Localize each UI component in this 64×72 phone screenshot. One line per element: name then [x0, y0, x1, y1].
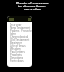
staticText: to choose from:	[18, 4, 46, 7]
staticText: Psalms	[10, 29, 20, 32]
button[interactable]: Beginner	[10, 41, 32, 44]
button[interactable]: Old Testament	[10, 38, 32, 41]
staticText: In a year	[10, 23, 22, 26]
button[interactable]: John	[10, 32, 32, 35]
staticText: your plan	[24, 7, 41, 10]
staticText: Paul letters	[10, 50, 25, 53]
staticText: Old Testament	[10, 38, 30, 41]
staticText: Forty days	[10, 59, 24, 62]
button[interactable]: New Testament	[10, 26, 32, 29]
button[interactable]: Wisdom	[10, 47, 32, 50]
staticText: New Testament	[10, 26, 31, 29]
button[interactable]: Prophets	[10, 53, 32, 56]
staticText: Wisdom	[10, 47, 21, 50]
button[interactable]: Forty days	[10, 59, 32, 62]
button[interactable]: Psalms	[10, 29, 32, 32]
staticText: Plenty of passages	[16, 1, 49, 4]
staticText: Life of Jesus	[10, 44, 26, 47]
staticText: Prophets	[10, 53, 22, 56]
staticText: John	[10, 32, 16, 35]
button[interactable]: Devotions	[10, 56, 32, 59]
staticText: Proverbs	[21, 29, 32, 32]
button[interactable]: Life of Jesus	[10, 44, 32, 47]
staticText: Chronological	[10, 35, 29, 38]
button[interactable]: In a year	[10, 23, 32, 26]
staticText: Devotions	[10, 56, 24, 59]
staticText: Beginner	[10, 41, 23, 44]
button[interactable]: Paul letters	[10, 50, 32, 53]
button[interactable]: Chronological	[10, 35, 32, 38]
